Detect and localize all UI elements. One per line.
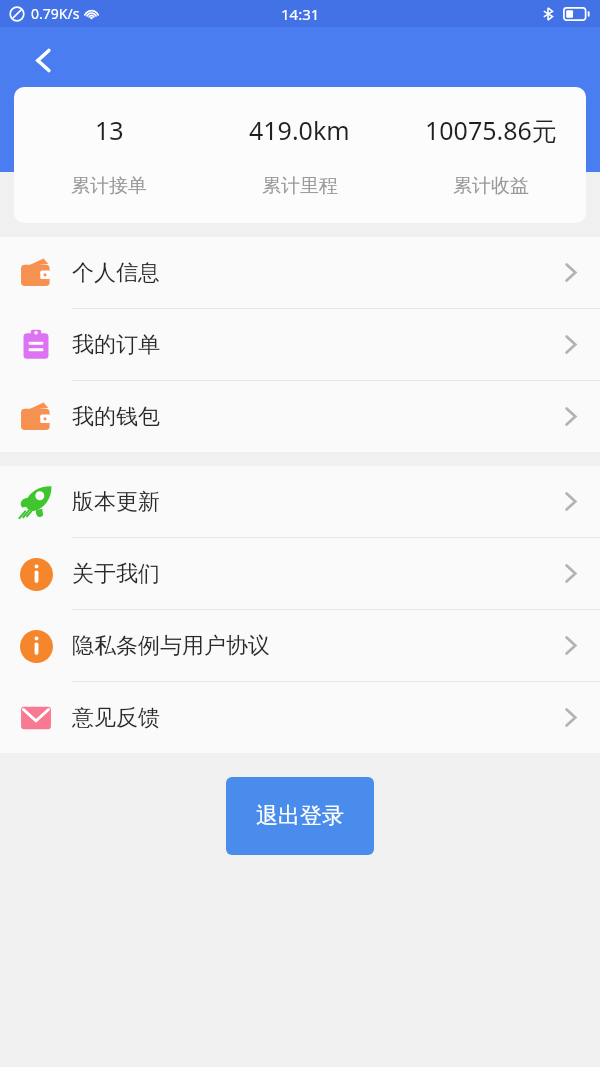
staticText: 累计收益 bbox=[453, 174, 529, 198]
staticText: 0.79K/s bbox=[31, 4, 80, 23]
staticText: 14:31 bbox=[281, 4, 320, 24]
button[interactable]: Back bbox=[16, 33, 70, 87]
button[interactable]: 个人信息 bbox=[0, 237, 600, 308]
staticText: 隐私条例与用户协议 bbox=[72, 632, 270, 660]
staticText: 累计接单 bbox=[71, 174, 147, 198]
staticText: 13 bbox=[95, 113, 124, 147]
button[interactable]: 我的钱包 bbox=[0, 381, 600, 452]
button[interactable]: 隐私条例与用户协议 bbox=[0, 610, 600, 681]
staticText: 419.0km bbox=[249, 113, 350, 147]
staticText: 10075.86元 bbox=[425, 113, 557, 147]
button[interactable]: 关于我们 bbox=[0, 538, 600, 609]
button[interactable]: 版本更新 bbox=[0, 466, 600, 537]
button[interactable]: 10075.86元 bbox=[395, 87, 586, 223]
staticText: 关于我们 bbox=[72, 560, 160, 588]
staticText: 累计里程 bbox=[262, 174, 338, 198]
staticText: 已认证(思高) bbox=[114, 175, 215, 200]
staticText: 我的钱包 bbox=[72, 403, 160, 431]
staticText: 张三一 bbox=[114, 133, 195, 167]
staticText: 意见反馈 bbox=[72, 704, 160, 732]
staticText: 个人信息 bbox=[72, 259, 160, 287]
button[interactable]: 13 bbox=[14, 87, 204, 223]
staticText: 鄂AH327Q 东风 bbox=[209, 137, 352, 164]
button[interactable]: 意见反馈 bbox=[0, 682, 600, 753]
button[interactable]: 419.0km bbox=[204, 87, 395, 223]
staticText: 我的订单 bbox=[72, 331, 160, 359]
staticText: 版本更新 bbox=[72, 488, 160, 516]
button[interactable]: 我的订单 bbox=[0, 309, 600, 380]
button[interactable]: 退出登录 bbox=[226, 777, 374, 855]
button[interactable]: Profile photo bbox=[14, 123, 100, 209]
staticText: 退出登录 bbox=[256, 802, 344, 830]
